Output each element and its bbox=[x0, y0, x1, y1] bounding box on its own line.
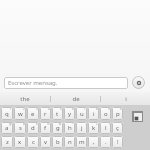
button[interactable]: c bbox=[27, 136, 39, 148]
staticText: . bbox=[105, 138, 107, 146]
button[interactable]: the bbox=[0, 92, 50, 105]
staticText: 7 bbox=[84, 107, 86, 111]
staticText: 5 bbox=[60, 107, 62, 111]
button[interactable]: Redimensionar teclado bbox=[132, 111, 143, 122]
staticText: , bbox=[93, 138, 95, 146]
staticText: 0 bbox=[120, 107, 122, 111]
button[interactable]: 2 bbox=[14, 107, 26, 120]
staticText: i bbox=[125, 95, 127, 103]
button[interactable]: & bbox=[52, 122, 63, 134]
staticText: f bbox=[44, 124, 47, 132]
button[interactable]: Escrever mensag. bbox=[4, 77, 128, 89]
staticText: de bbox=[72, 95, 80, 103]
button[interactable]: de bbox=[51, 92, 100, 105]
staticText: q bbox=[5, 110, 9, 118]
staticText: z bbox=[6, 138, 9, 146]
button[interactable]: ) bbox=[112, 122, 123, 134]
button[interactable]: @ bbox=[1, 122, 13, 134]
staticText: y bbox=[68, 110, 72, 118]
button[interactable]: v bbox=[40, 136, 51, 148]
staticText: ( bbox=[109, 122, 110, 126]
button[interactable]: - bbox=[76, 122, 87, 134]
staticText: the bbox=[20, 95, 30, 103]
staticText: j bbox=[81, 124, 83, 132]
staticText: $ bbox=[36, 122, 38, 126]
staticText: l bbox=[105, 124, 107, 132]
button[interactable]: # bbox=[14, 122, 26, 134]
staticText: m bbox=[79, 138, 85, 146]
staticText: 3 bbox=[36, 107, 38, 111]
staticText: t bbox=[56, 110, 59, 118]
button[interactable]: ! bbox=[112, 136, 123, 148]
button[interactable]: Enviar bbox=[132, 76, 145, 89]
staticText: v bbox=[44, 138, 48, 146]
button[interactable]: 3 bbox=[27, 107, 39, 120]
staticText: a bbox=[5, 124, 9, 132]
button[interactable]: 7 bbox=[76, 107, 87, 120]
button[interactable]: + bbox=[88, 122, 99, 134]
staticText: b bbox=[56, 138, 60, 146]
staticText: 2 bbox=[23, 107, 25, 111]
button[interactable]: . bbox=[100, 136, 111, 148]
button[interactable]: 6 bbox=[64, 107, 75, 120]
staticText: o bbox=[104, 110, 108, 118]
button[interactable]: b bbox=[52, 136, 63, 148]
button[interactable]: m bbox=[76, 136, 87, 148]
staticText: h bbox=[68, 124, 72, 132]
staticText: ! bbox=[117, 138, 119, 146]
button[interactable]: * bbox=[64, 122, 75, 134]
staticText: 8 bbox=[96, 107, 98, 111]
staticText: p bbox=[116, 110, 120, 118]
button[interactable]: 9 bbox=[100, 107, 111, 120]
staticText: w bbox=[18, 110, 23, 118]
button[interactable]: 1 bbox=[1, 107, 13, 120]
button[interactable]: z bbox=[1, 136, 13, 148]
staticText: i bbox=[93, 110, 95, 118]
staticText: + bbox=[96, 122, 98, 126]
staticText: ç bbox=[116, 124, 119, 132]
staticText: - bbox=[85, 122, 86, 126]
staticText: & bbox=[59, 122, 62, 126]
button[interactable]: $ bbox=[27, 122, 39, 134]
button[interactable]: 0 bbox=[112, 107, 123, 120]
staticText: 4 bbox=[48, 107, 50, 111]
staticText: 6 bbox=[72, 107, 74, 111]
staticText: k bbox=[92, 124, 96, 132]
button[interactable]: 8 bbox=[88, 107, 99, 120]
button[interactable]: ( bbox=[100, 122, 111, 134]
staticText: 1 bbox=[10, 107, 12, 111]
staticText: 9 bbox=[108, 107, 110, 111]
staticText: # bbox=[23, 122, 25, 126]
staticText: u bbox=[80, 110, 84, 118]
staticText: r bbox=[44, 110, 47, 118]
button[interactable]: i bbox=[101, 92, 150, 105]
button[interactable]: , bbox=[88, 136, 99, 148]
staticText: g bbox=[56, 124, 60, 132]
staticText: c bbox=[32, 138, 35, 146]
staticText: * bbox=[72, 122, 74, 126]
button[interactable]: n bbox=[64, 136, 75, 148]
button[interactable]: 4 bbox=[40, 107, 51, 120]
staticText: n bbox=[68, 138, 72, 146]
staticText: x bbox=[18, 138, 22, 146]
staticText: ) bbox=[121, 122, 122, 126]
staticText: e bbox=[31, 110, 35, 118]
button[interactable]: % bbox=[40, 122, 51, 134]
staticText: d bbox=[31, 124, 35, 132]
staticText: @ bbox=[9, 122, 12, 126]
staticText: Escrever mensag. bbox=[8, 79, 58, 87]
staticText: s bbox=[19, 124, 22, 132]
staticText: % bbox=[47, 122, 50, 126]
button[interactable]: 5 bbox=[52, 107, 63, 120]
button[interactable]: x bbox=[14, 136, 26, 148]
